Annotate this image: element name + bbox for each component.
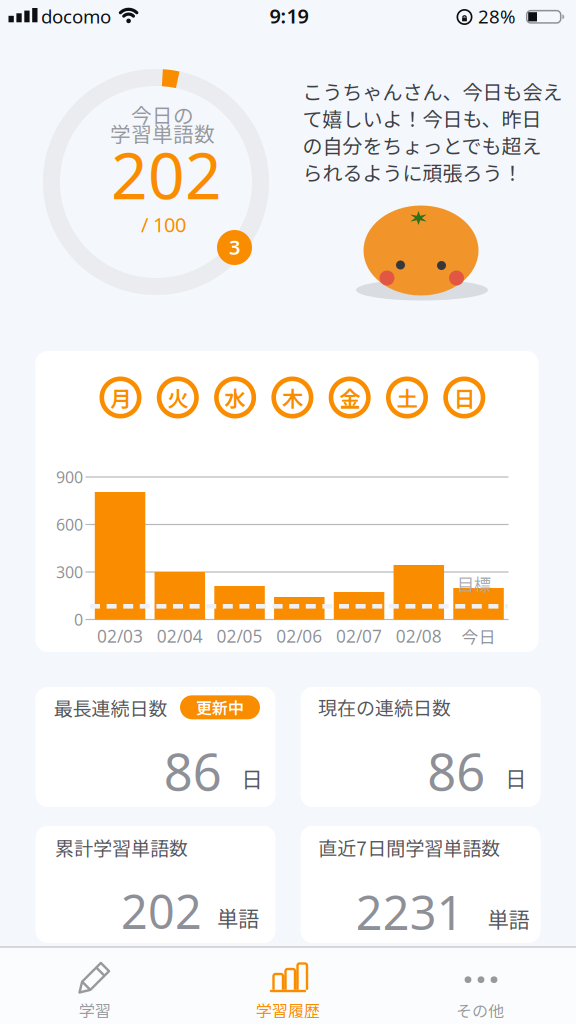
staticText: docomo	[41, 4, 111, 29]
staticText: 単語	[487, 903, 529, 934]
staticText: その他	[456, 998, 504, 1022]
staticText: 900	[56, 466, 83, 488]
staticText: られるように頑張ろう！	[302, 157, 522, 186]
staticText: 202	[111, 132, 222, 217]
staticText: 学習	[79, 998, 111, 1022]
staticText: 累計学習単語数	[55, 833, 188, 861]
staticText: 水	[225, 382, 246, 413]
staticText: 月	[110, 382, 131, 413]
staticText: こうちゃんさん、今日も会え	[302, 76, 562, 105]
staticText: 更新中	[196, 696, 244, 719]
staticText: 最長連続日数	[53, 694, 167, 721]
staticText: 単語	[217, 902, 259, 933]
staticText: 600	[56, 514, 83, 535]
staticText: 2231	[356, 881, 464, 943]
staticText: 現在の連続日数	[318, 693, 451, 721]
staticText: 202	[121, 880, 202, 942]
staticText: 02/06	[276, 624, 322, 647]
staticText: 0	[74, 609, 83, 630]
staticText: 日	[505, 762, 526, 793]
staticText: の自分をちょっとでも超え	[302, 130, 541, 159]
staticText: 目標	[457, 571, 491, 597]
staticText: 28%	[478, 4, 516, 29]
staticText: 02/07	[336, 624, 382, 647]
staticText: 3	[229, 234, 240, 260]
button[interactable]: 学習履歴	[202, 948, 374, 1024]
staticText: て嬉しいよ！今日も、昨日	[302, 103, 541, 132]
staticText: 土	[396, 382, 417, 413]
staticText: 直近7日間学習単語数	[318, 833, 500, 861]
staticText: 学習履歴	[256, 998, 320, 1022]
staticText: 86	[164, 737, 222, 805]
staticText: 今日の	[131, 99, 194, 129]
staticText: 9:19	[269, 2, 308, 29]
staticText: 学習単語数	[110, 118, 215, 148]
staticText: 300	[56, 561, 83, 583]
staticText: / 100	[141, 211, 186, 238]
staticText: 02/08	[396, 624, 442, 647]
staticText: 木	[282, 382, 303, 413]
staticText: 金	[339, 382, 360, 413]
staticText: 火	[167, 382, 188, 413]
staticText: 今日	[461, 624, 495, 648]
staticText: 02/05	[216, 624, 262, 647]
staticText: 日	[241, 763, 262, 793]
staticText: 02/04	[157, 624, 203, 647]
staticText: 日	[454, 382, 475, 413]
staticText: 02/03	[97, 624, 143, 647]
staticText: 86	[427, 737, 485, 805]
button[interactable]: 学習	[9, 948, 181, 1024]
button[interactable]: その他	[394, 948, 566, 1024]
